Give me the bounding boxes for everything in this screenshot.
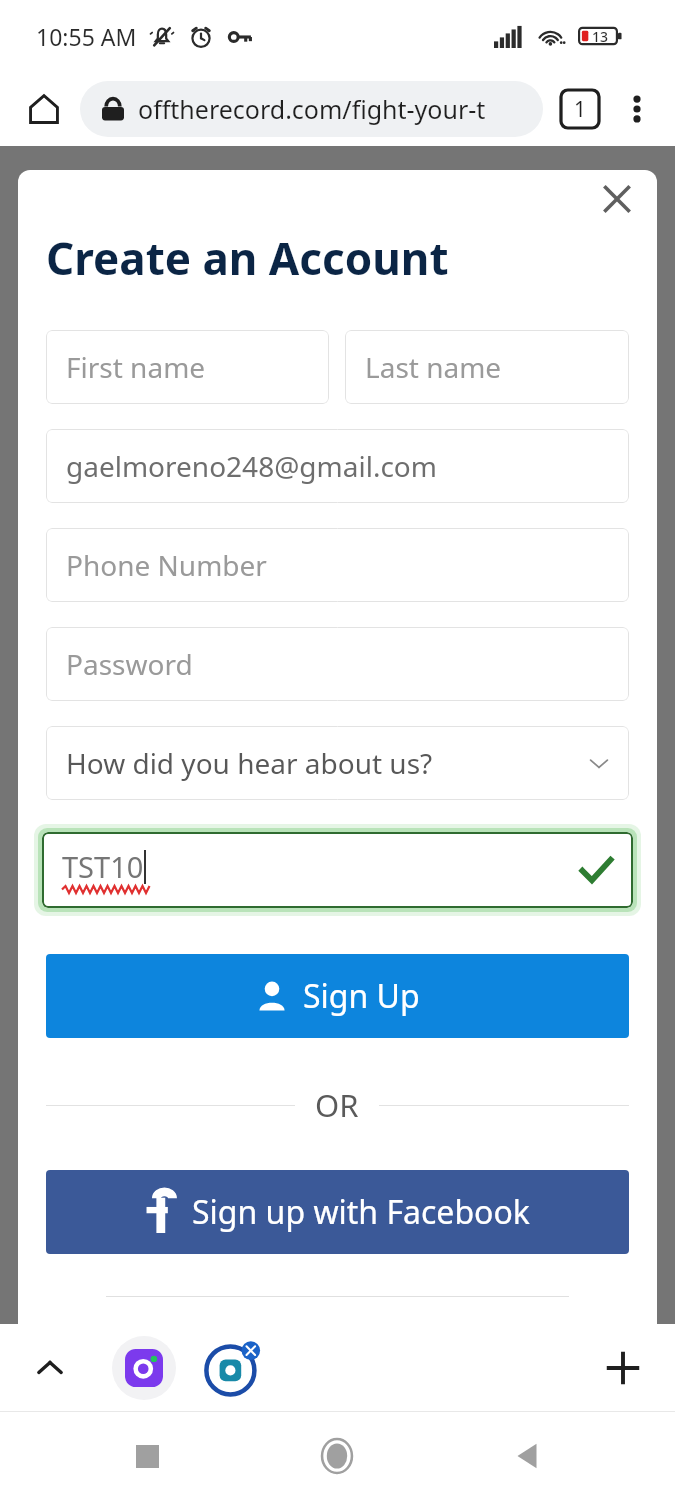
button[interactable]: Recent apps [117, 1426, 177, 1486]
staticText: 1 [574, 95, 587, 124]
staticText: Password [66, 645, 193, 683]
button[interactable]: Tabs: 1 open [557, 86, 603, 132]
staticText: offtherecord.com/fight-your-t [138, 92, 486, 126]
button[interactable]: Expand [24, 1342, 76, 1394]
button[interactable]: First name [46, 330, 329, 404]
staticText: Sign up with Facebook [192, 1190, 530, 1234]
staticText: 13 [592, 27, 609, 46]
button[interactable]: TST10 [42, 832, 633, 908]
staticText: Sign Up [303, 974, 420, 1018]
staticText: 10:55 AM [36, 21, 137, 52]
button[interactable]: Close [591, 173, 643, 225]
button[interactable]: More options [613, 85, 661, 133]
staticText: How did you hear about us? [66, 744, 587, 782]
button[interactable]: offtherecord.com/fight-your-t [80, 81, 543, 137]
button[interactable]: Add [593, 1338, 653, 1398]
button[interactable]: Sign up with Facebook [46, 1170, 629, 1254]
staticText: First name [66, 348, 206, 386]
button[interactable]: How did you hear about us? [46, 726, 629, 800]
staticText: Create an Account [46, 228, 449, 288]
button[interactable]: Back [497, 1426, 557, 1486]
button[interactable]: Home [20, 85, 68, 133]
button[interactable]: Last name [345, 330, 629, 404]
button[interactable]: Password [46, 627, 629, 701]
staticText: TST10 [62, 847, 144, 886]
button[interactable]: Sign Up [46, 954, 629, 1038]
button[interactable]: Home [307, 1426, 367, 1486]
staticText: gaelmoreno248@gmail.com [66, 447, 437, 485]
staticText: Phone Number [66, 546, 267, 584]
button[interactable]: Password manager [112, 1336, 176, 1400]
button[interactable]: gaelmoreno248@gmail.com [46, 429, 629, 503]
button[interactable]: Phone Number [46, 528, 629, 602]
button[interactable]: Autofill suggestion [198, 1332, 270, 1404]
staticText: Last name [365, 348, 502, 386]
staticText: OR [315, 1084, 359, 1126]
